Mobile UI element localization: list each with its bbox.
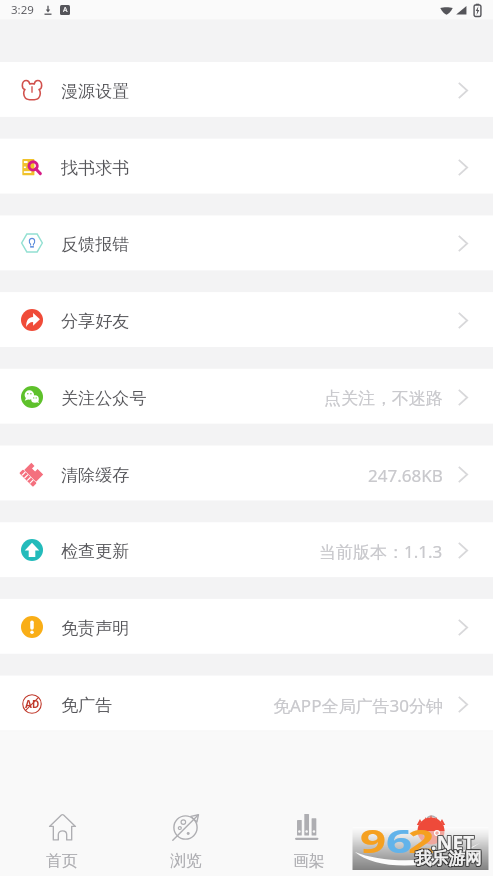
staticText: 免APP全局广告30分钟 — [273, 694, 443, 717]
staticText: .NET — [431, 830, 475, 856]
staticText: .NET — [432, 831, 476, 857]
staticText: 浏览 — [170, 851, 202, 871]
staticText: 找书求书 — [61, 158, 130, 180]
staticText: 画架 — [293, 851, 325, 871]
button[interactable]: 反馈报错 — [0, 215, 493, 270]
staticText: .NET — [431, 831, 475, 857]
staticText: 清除缓存 — [61, 465, 130, 487]
staticText: AD — [25, 697, 40, 711]
staticText: 关注公众号 — [61, 388, 147, 410]
button[interactable]: AD — [0, 676, 493, 731]
button[interactable]: 分享好友 — [0, 292, 493, 347]
button[interactable]: 画架 — [247, 800, 370, 876]
staticText: .NET — [430, 831, 474, 857]
staticText: 9 — [360, 818, 386, 863]
button[interactable]: 首页 — [0, 800, 124, 876]
button[interactable]: 关注公众号 — [0, 369, 493, 424]
staticText: 漫源设置 — [61, 81, 130, 103]
button[interactable]: 漫源设置 — [0, 62, 493, 117]
button[interactable]: 免责声明 — [0, 599, 493, 654]
button[interactable]: 找书求书 — [0, 139, 493, 194]
staticText: 免广告 — [61, 695, 113, 717]
staticText: .NET — [430, 829, 474, 855]
staticText: 我乐游网 — [416, 849, 483, 870]
staticText: .NET — [432, 830, 476, 856]
staticText: 免责声明 — [61, 618, 130, 640]
staticText: 2 — [408, 818, 434, 863]
staticText: 我乐游网 — [414, 847, 481, 868]
staticText: 我乐游网 — [415, 847, 482, 868]
staticText: 检查更新 — [61, 541, 130, 563]
staticText: 我的 — [416, 851, 448, 871]
staticText: .NET — [432, 829, 476, 855]
button[interactable]: 浏览 — [124, 800, 247, 876]
staticText: 我乐游网 — [415, 848, 482, 869]
staticText: 我乐游网 — [414, 849, 481, 870]
staticText: 分享好友 — [61, 311, 130, 333]
staticText: 点关注，不迷路 — [324, 388, 443, 409]
staticText: 我乐游网 — [416, 848, 483, 869]
staticText: 当前版本：1.1.3 — [319, 540, 443, 563]
staticText: .NET — [431, 829, 475, 855]
staticText: 我乐游网 — [414, 848, 481, 869]
button[interactable]: 清除缓存 — [0, 446, 493, 501]
staticText: .NET — [430, 830, 474, 856]
staticText: A — [63, 5, 68, 15]
button[interactable]: 检查更新 — [0, 522, 493, 577]
staticText: 我乐游网 — [416, 847, 483, 868]
staticText: 反馈报错 — [61, 234, 130, 256]
staticText: 我乐游网 — [415, 849, 482, 870]
staticText: 3:29 — [11, 2, 34, 18]
staticText: 6 — [386, 818, 412, 863]
staticText: 首页 — [46, 851, 78, 871]
button[interactable]: 我的 — [370, 800, 493, 876]
staticText: 247.68KB — [368, 464, 443, 487]
